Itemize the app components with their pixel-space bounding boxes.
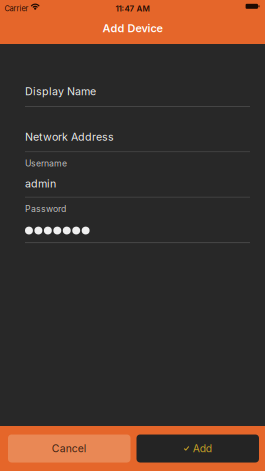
staticText: Display Name <box>25 85 96 98</box>
staticText: Network Address <box>25 130 114 143</box>
staticText: Carrier <box>4 4 28 13</box>
staticText: 11:47 AM <box>115 4 149 13</box>
staticText: Cancel <box>52 442 87 455</box>
staticText: admin <box>25 177 56 190</box>
staticText: Add <box>193 442 212 455</box>
button[interactable]: Add <box>136 434 259 462</box>
staticText: Add Device <box>102 22 162 35</box>
staticText: Username <box>25 158 67 169</box>
button[interactable]: Cancel <box>8 434 130 462</box>
staticText: Password <box>25 204 66 214</box>
